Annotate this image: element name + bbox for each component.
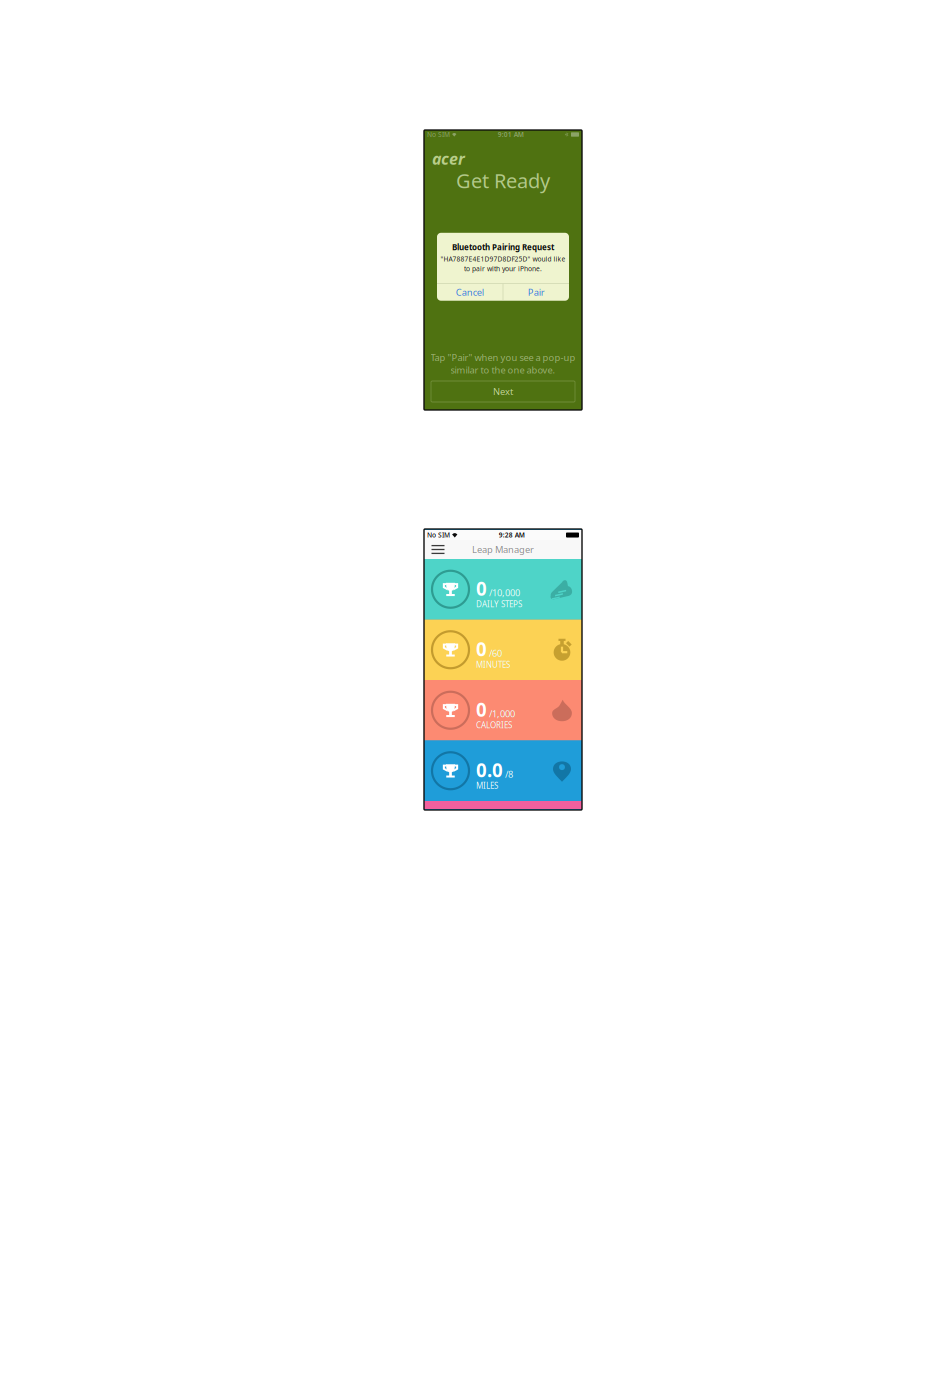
staticText: Bluetooth Pairing Request	[452, 242, 554, 252]
staticText: /60	[489, 647, 502, 659]
staticText: 9:28 AM	[499, 531, 525, 539]
staticText: MILES	[476, 780, 498, 791]
staticText: Leap Manager	[472, 543, 534, 556]
staticText: 0	[476, 636, 487, 661]
staticText: /8	[505, 768, 513, 780]
staticText: 0.0	[476, 757, 503, 782]
button[interactable]: 0	[424, 559, 582, 619]
staticText: CALORIES	[476, 720, 512, 730]
staticText: Next	[493, 385, 513, 398]
button[interactable]: Cancel	[437, 284, 503, 301]
button[interactable]: Next	[431, 381, 575, 402]
staticText: /1,000	[489, 707, 515, 720]
staticText: MINUTES	[476, 659, 510, 670]
staticText: "HA7887E4E1D97D8DF25D" would like	[440, 254, 565, 263]
staticText: acer	[432, 148, 465, 169]
staticText: 0	[476, 697, 487, 722]
staticText: similar to the one above.	[450, 364, 555, 376]
staticText: /10,000	[489, 586, 520, 599]
staticText: 0	[476, 576, 487, 601]
staticText: Get Ready	[456, 167, 550, 194]
staticText: DAILY STEPS	[476, 599, 522, 609]
staticText: to pair with your iPhone.	[464, 264, 542, 273]
button[interactable]: 0.0	[424, 740, 582, 801]
staticText: Cancel	[456, 286, 484, 298]
button[interactable]: Pair	[503, 284, 569, 301]
staticText: No SIM	[427, 130, 450, 139]
button[interactable]: Menu	[427, 540, 449, 559]
button[interactable]: 0	[424, 680, 582, 740]
staticText: Tap "Pair" when you see a pop-up	[430, 351, 575, 364]
staticText: No SIM	[427, 531, 450, 539]
staticText: 9:01 AM	[498, 130, 524, 139]
staticText: Pair	[528, 286, 545, 298]
button[interactable]: 0	[424, 619, 582, 680]
